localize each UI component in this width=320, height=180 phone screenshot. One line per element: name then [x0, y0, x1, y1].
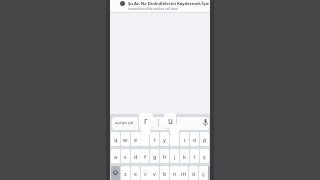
- staticText: ö: [192, 170, 196, 177]
- button[interactable]: ç: [199, 166, 208, 180]
- staticText: f: [144, 153, 146, 160]
- button[interactable]: w: [121, 132, 130, 146]
- staticText: l: [194, 153, 196, 160]
- button[interactable]: [208, 166, 210, 180]
- button[interactable]: g: [150, 149, 159, 163]
- button[interactable]: [111, 166, 120, 180]
- button[interactable]: ö: [189, 166, 198, 180]
- button[interactable]: y: [160, 132, 169, 146]
- button[interactable]: f: [140, 149, 149, 163]
- staticText: y: [163, 136, 166, 143]
- staticText: j: [174, 153, 176, 160]
- staticText: z: [124, 170, 127, 177]
- staticText: k: [183, 153, 186, 160]
- button[interactable]: z: [121, 166, 130, 180]
- button[interactable]: q: [111, 132, 120, 146]
- button[interactable]: m: [179, 166, 188, 180]
- staticText: a: [114, 153, 118, 160]
- button[interactable]: t: [150, 132, 159, 146]
- button[interactable]: ı: [180, 132, 189, 146]
- staticText: t: [154, 136, 156, 143]
- button[interactable]: k: [180, 149, 189, 163]
- staticText: o: [193, 136, 197, 143]
- button[interactable]: p: [200, 132, 209, 146]
- button[interactable]: h: [160, 149, 169, 163]
- button[interactable]: r: [139, 113, 153, 128]
- button[interactable]: u: [164, 113, 176, 128]
- staticText: m: [181, 170, 187, 177]
- staticText: ı: [184, 136, 186, 143]
- button[interactable]: d: [131, 149, 140, 163]
- staticText: x: [134, 170, 137, 177]
- button[interactable]: a: [111, 149, 120, 163]
- staticText: v: [153, 170, 156, 177]
- staticText: açelya çal: [115, 120, 133, 125]
- staticText: h: [163, 153, 167, 160]
- button[interactable]: s: [121, 149, 130, 163]
- staticText: q: [114, 136, 118, 143]
- button[interactable]: [112, 117, 209, 130]
- staticText: soundcloud'da açelya çal denilince: [128, 6, 178, 10]
- staticText: ş: [203, 153, 206, 160]
- button[interactable]: v: [150, 166, 159, 180]
- staticText: s: [124, 153, 127, 160]
- staticText: g: [153, 153, 157, 160]
- button[interactable]: j: [170, 149, 179, 163]
- staticText: c: [144, 170, 147, 177]
- staticText: w: [123, 136, 128, 143]
- staticText: ç: [202, 170, 205, 177]
- button[interactable]: c: [141, 166, 150, 180]
- staticText: Şu An Ne Dinlediklerini Kaydetmek İçin K…: [128, 1, 209, 7]
- button[interactable]: e: [131, 132, 140, 146]
- staticText: n: [173, 170, 177, 177]
- staticText: r: [144, 115, 148, 126]
- button[interactable]: o: [190, 132, 199, 146]
- staticText: b: [163, 170, 167, 177]
- staticText: d: [134, 153, 138, 160]
- staticText: p: [203, 136, 207, 143]
- button[interactable]: [110, 0, 210, 12]
- button[interactable]: x: [131, 166, 140, 180]
- button[interactable]: b: [160, 166, 169, 180]
- staticText: e: [134, 136, 138, 143]
- button[interactable]: l: [190, 149, 199, 163]
- button[interactable]: n: [170, 166, 179, 180]
- button[interactable]: ş: [200, 149, 209, 163]
- staticText: u: [168, 115, 173, 126]
